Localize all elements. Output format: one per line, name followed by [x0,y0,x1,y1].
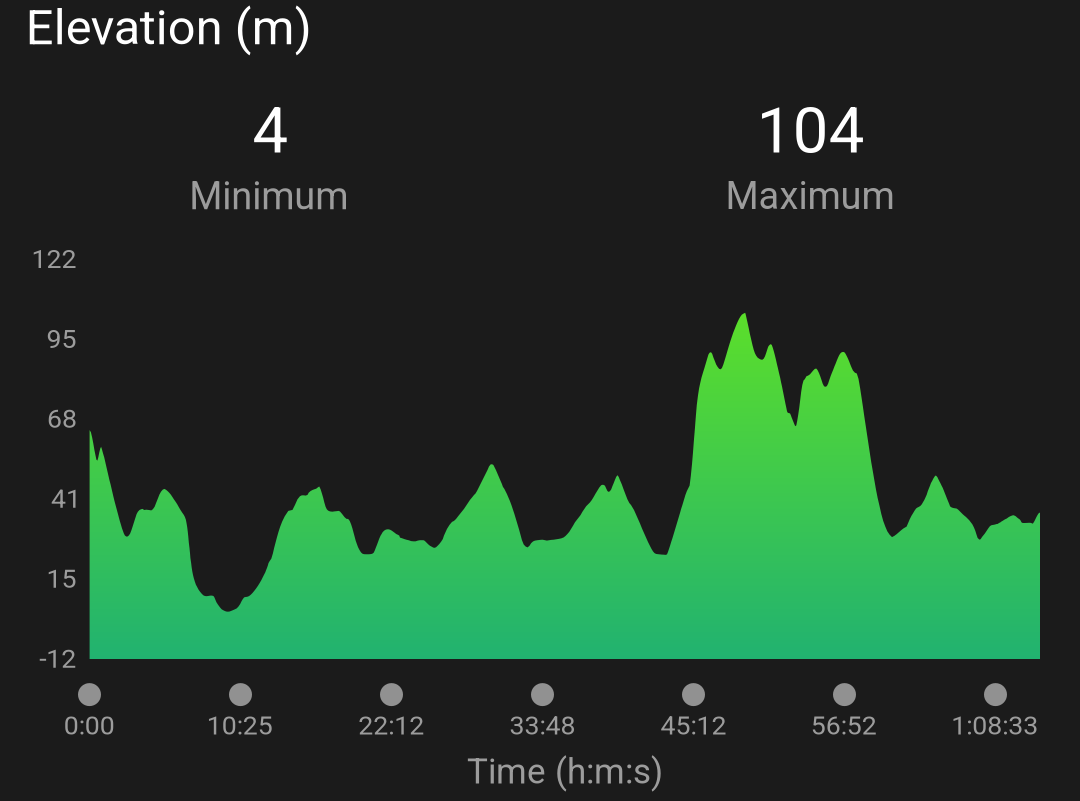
staticText: 0:00 [64,710,115,741]
staticText: 1:08:33 [951,710,1038,741]
staticText: 10:25 [207,710,273,741]
staticText: 15 [47,563,77,594]
staticText: 22:12 [358,710,424,741]
staticText: 45:12 [660,710,726,741]
staticText: Maximum [725,174,894,218]
staticText: 95 [47,323,77,354]
staticText: 4 [252,94,288,168]
staticText: 104 [757,94,865,168]
staticText: Elevation (m) [26,0,312,56]
staticText: Time (h:m:s) [467,751,663,792]
staticText: 68 [47,403,77,434]
staticText: 56:52 [811,710,877,741]
staticText: 41 [51,483,81,514]
staticText: 122 [31,243,76,274]
staticText: -12 [39,643,76,674]
staticText: Minimum [189,174,348,219]
staticText: 33:48 [509,710,575,741]
